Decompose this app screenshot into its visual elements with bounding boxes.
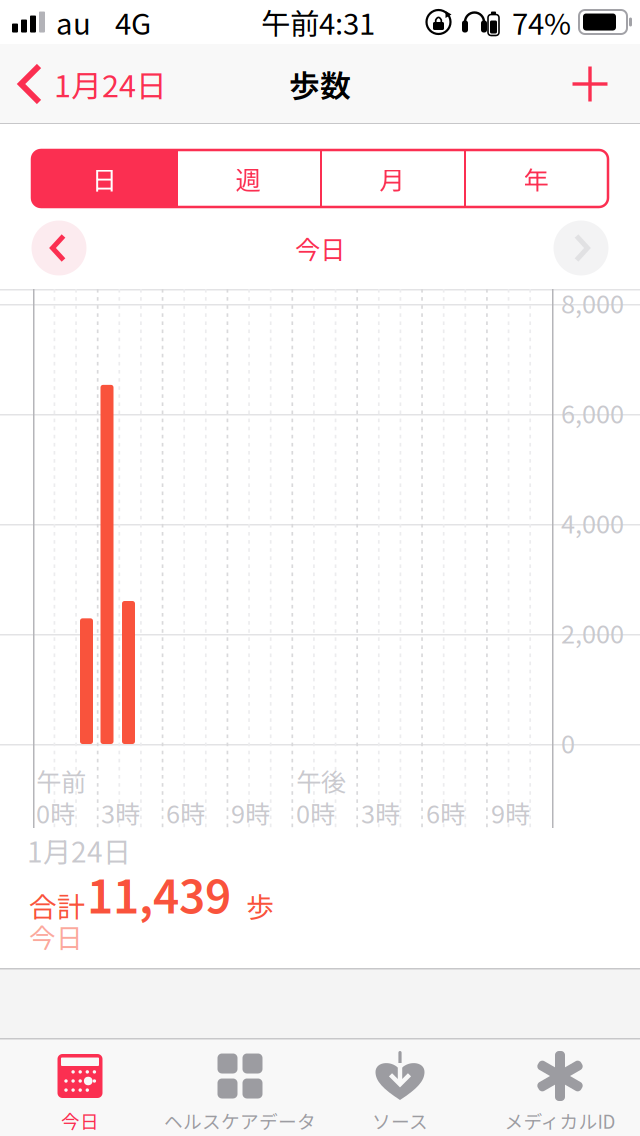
staticText: 月: [379, 160, 404, 197]
staticText: 3時: [361, 794, 400, 831]
staticText: 0: [561, 724, 575, 761]
staticText: 歩数: [289, 62, 351, 106]
staticText: 6時: [166, 794, 205, 831]
staticText: 年: [523, 160, 548, 197]
staticText: 今日: [61, 1107, 99, 1134]
staticText: 0時: [36, 794, 75, 831]
staticText: au: [56, 1, 91, 43]
button[interactable]: Next day: [542, 213, 620, 283]
button[interactable]: ヘルスケアデータ: [160, 1038, 320, 1136]
staticText: 歩: [246, 885, 274, 925]
staticText: 6時: [426, 794, 465, 831]
button[interactable]: Add data: [554, 44, 626, 124]
staticText: ヘルスケアデータ: [164, 1107, 316, 1134]
button[interactable]: メディカルID: [480, 1038, 640, 1136]
staticText: 3時: [101, 794, 140, 831]
staticText: 74%: [512, 1, 571, 43]
button[interactable]: 週: [176, 150, 320, 207]
staticText: 午前: [36, 762, 86, 799]
staticText: 4,000: [561, 504, 624, 541]
button[interactable]: 年: [464, 150, 608, 207]
staticText: 6,000: [561, 394, 624, 431]
button[interactable]: 日: [32, 150, 176, 207]
button[interactable]: Previous day: [20, 213, 98, 283]
staticText: 9時: [491, 794, 530, 831]
staticText: 午後: [296, 762, 346, 799]
staticText: 1月24日: [27, 830, 131, 870]
staticText: メディカルID: [504, 1107, 615, 1134]
button[interactable]: 今日: [0, 1038, 160, 1136]
staticText: 午前4:31: [261, 1, 375, 43]
button[interactable]: 月: [320, 150, 464, 207]
staticText: ソース: [372, 1107, 428, 1134]
staticText: 11,439: [87, 861, 231, 927]
staticText: 週: [235, 160, 260, 197]
staticText: 1月24日: [54, 62, 167, 106]
staticText: 今日: [29, 917, 83, 956]
button[interactable]: 1月24日: [0, 44, 183, 124]
staticText: 9時: [231, 794, 270, 831]
staticText: 日: [91, 160, 116, 197]
staticText: 今日: [295, 230, 345, 266]
staticText: 合計: [29, 885, 85, 925]
staticText: 0時: [296, 794, 335, 831]
staticText: 8,000: [561, 284, 624, 321]
staticText: 2,000: [561, 614, 624, 651]
button[interactable]: ソース: [320, 1038, 480, 1136]
staticText: 4G: [115, 1, 151, 43]
